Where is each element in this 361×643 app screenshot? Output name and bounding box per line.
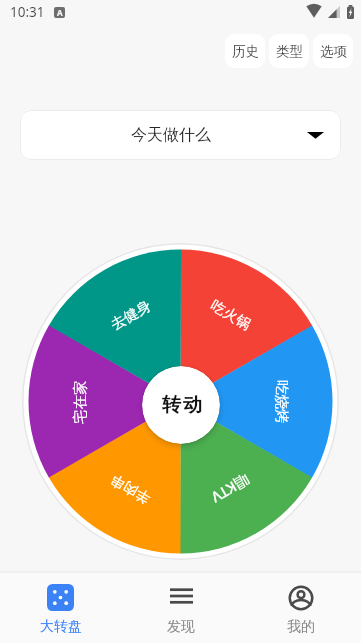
staticText: 宅在家 bbox=[71, 380, 89, 424]
button[interactable]: 类型 bbox=[269, 34, 309, 68]
staticText: 类型 bbox=[276, 43, 303, 60]
button[interactable]: 转动 bbox=[142, 366, 220, 444]
staticText: 吃火锅 bbox=[207, 296, 254, 334]
staticText: 吃烧烤 bbox=[273, 380, 291, 424]
staticText: 选项 bbox=[320, 43, 347, 60]
staticText: 我的 bbox=[287, 618, 315, 636]
staticText: 转动 bbox=[161, 393, 203, 417]
staticText: 羊肉串 bbox=[106, 470, 153, 508]
staticText: 发现 bbox=[167, 618, 195, 636]
staticText: A bbox=[57, 7, 63, 18]
staticText: 今天做什么 bbox=[131, 125, 211, 145]
button[interactable]: 选项 bbox=[313, 34, 353, 68]
button[interactable]: 发现 bbox=[121, 573, 241, 643]
button[interactable]: 历史 bbox=[225, 34, 265, 68]
staticText: 历史 bbox=[232, 43, 259, 60]
staticText: 唱KTV bbox=[208, 470, 253, 508]
staticText: 去健身 bbox=[107, 296, 154, 334]
button[interactable]: 我的 bbox=[241, 573, 361, 643]
staticText: 大转盘 bbox=[40, 618, 82, 636]
button[interactable]: 大转盘 bbox=[0, 573, 121, 643]
staticText: 10:31 bbox=[10, 3, 45, 21]
button[interactable]: 今天做什么 bbox=[20, 110, 341, 160]
